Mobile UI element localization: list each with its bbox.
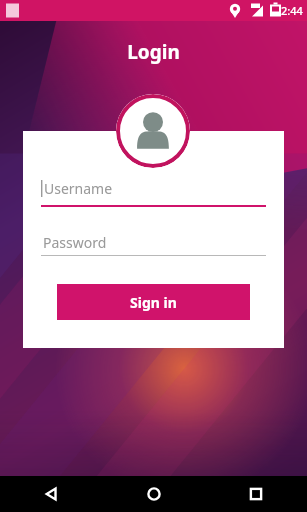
button[interactable]: Home <box>103 476 205 512</box>
staticText: Sign in <box>130 293 177 312</box>
staticText: Password <box>43 233 107 252</box>
staticText: 2:44 <box>281 3 303 18</box>
other: Profile avatar <box>116 94 190 168</box>
button[interactable]: Password <box>41 229 266 255</box>
staticText: Username <box>44 179 113 198</box>
button[interactable]: Back <box>0 476 103 512</box>
button[interactable]: Sign in <box>57 284 250 320</box>
button[interactable]: Recent apps <box>205 476 307 512</box>
staticText: Login <box>0 39 307 65</box>
button[interactable]: Username <box>41 179 266 205</box>
